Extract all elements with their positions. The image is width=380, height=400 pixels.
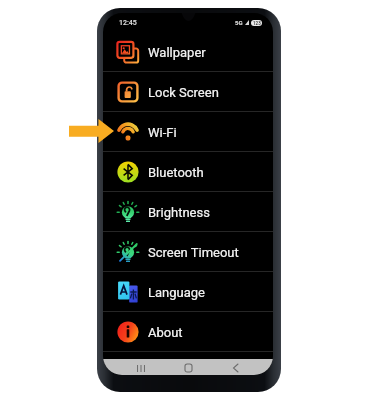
button[interactable]: Lock Screen xyxy=(103,72,273,111)
staticText: Lock Screen xyxy=(148,85,219,100)
staticText: Screen Timeout xyxy=(148,245,239,260)
staticText: About xyxy=(148,325,183,340)
staticText: Brightness xyxy=(148,205,210,220)
button[interactable]: About xyxy=(103,312,273,351)
button[interactable]: Home xyxy=(179,361,197,375)
staticText: Wi-Fi xyxy=(148,125,177,140)
staticText: Language xyxy=(148,285,205,300)
button[interactable]: Screen Timeout xyxy=(103,232,273,271)
button[interactable]: Back xyxy=(226,361,244,375)
button[interactable]: Recents xyxy=(132,361,150,375)
button[interactable]: Brightness xyxy=(103,192,273,231)
button[interactable]: Wi-Fi xyxy=(103,112,273,151)
button[interactable]: Wallpaper xyxy=(103,32,273,71)
staticText: 12:45 xyxy=(119,19,137,27)
staticText: 123 xyxy=(253,21,261,26)
button[interactable]: Language xyxy=(103,272,273,311)
button[interactable]: Bluetooth xyxy=(103,152,273,191)
staticText: 5G xyxy=(235,19,243,26)
staticText: Bluetooth xyxy=(148,165,204,180)
staticText: Wallpaper xyxy=(148,45,206,60)
